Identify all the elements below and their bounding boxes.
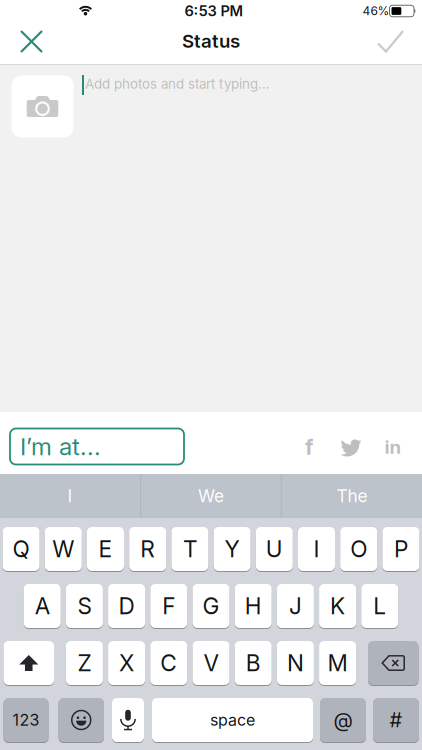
staticText: Q <box>13 536 30 562</box>
button[interactable]: Share to Twitter <box>335 434 366 461</box>
staticText: D <box>119 593 135 619</box>
staticText: Y <box>225 536 240 562</box>
button[interactable]: Hashtag <box>373 697 419 742</box>
button[interactable]: L <box>361 583 398 628</box>
button[interactable]: Emoji <box>58 697 104 742</box>
staticText: R <box>140 536 155 562</box>
button[interactable]: P <box>382 526 419 571</box>
staticText: F <box>162 593 175 619</box>
button[interactable]: Dictate <box>112 697 144 742</box>
staticText: O <box>350 536 367 562</box>
button[interactable]: J <box>277 583 314 628</box>
button[interactable]: D <box>108 583 145 628</box>
staticText: We <box>198 486 224 506</box>
staticText: 123 <box>12 711 39 729</box>
staticText: I <box>67 486 72 506</box>
button[interactable]: T <box>171 526 208 571</box>
staticText: C <box>160 650 177 676</box>
button[interactable]: Space <box>152 697 313 742</box>
button[interactable]: We <box>146 474 276 518</box>
button[interactable]: Numbers <box>3 697 48 742</box>
button[interactable]: N <box>277 640 314 685</box>
staticText: L <box>373 593 386 619</box>
button[interactable]: Y <box>214 526 251 571</box>
button[interactable]: W <box>45 526 82 571</box>
staticText: The <box>336 486 367 506</box>
button[interactable]: Q <box>3 526 40 571</box>
button[interactable]: Share to Facebook <box>294 432 324 462</box>
staticText: S <box>77 593 91 619</box>
staticText: N <box>287 650 304 676</box>
staticText: X <box>119 650 134 676</box>
staticText: E <box>98 536 112 562</box>
staticText: J <box>289 593 302 619</box>
button[interactable]: X <box>108 640 145 685</box>
staticText: # <box>389 708 402 732</box>
button[interactable]: A <box>24 583 61 628</box>
button[interactable]: Post status <box>369 22 412 61</box>
staticText: f <box>305 434 313 460</box>
button[interactable]: The <box>287 474 417 518</box>
button[interactable]: H <box>235 583 272 628</box>
staticText: B <box>246 650 261 676</box>
staticText: in <box>384 436 401 458</box>
button[interactable]: Shift <box>3 640 54 685</box>
button[interactable]: Delete <box>368 640 418 685</box>
staticText: P <box>394 536 408 562</box>
button[interactable]: Z <box>66 640 103 685</box>
staticText: U <box>266 536 283 562</box>
button[interactable]: F <box>150 583 187 628</box>
button[interactable]: Share to LinkedIn <box>378 432 408 462</box>
staticText: W <box>52 536 74 562</box>
button[interactable]: Close <box>11 21 52 62</box>
button[interactable]: Add photos <box>11 75 73 137</box>
button[interactable]: V <box>192 640 229 685</box>
staticText: K <box>330 593 345 619</box>
button[interactable]: At <box>320 697 366 742</box>
button[interactable]: B <box>235 640 272 685</box>
staticText: Z <box>77 650 91 676</box>
staticText: 6:53 PM <box>184 2 243 19</box>
button[interactable]: K <box>319 583 356 628</box>
button[interactable]: U <box>256 526 293 571</box>
button[interactable]: I <box>5 474 135 518</box>
button[interactable]: O <box>340 526 377 571</box>
staticText: M <box>328 650 348 676</box>
button[interactable]: M <box>319 640 356 685</box>
staticText: V <box>203 650 218 676</box>
staticText: space <box>210 711 255 729</box>
button[interactable]: G <box>192 583 229 628</box>
button[interactable]: E <box>87 526 124 571</box>
staticText: I <box>313 536 319 562</box>
staticText: @ <box>333 708 352 732</box>
staticText: A <box>35 593 50 619</box>
button[interactable]: I <box>298 526 335 571</box>
button[interactable]: S <box>66 583 103 628</box>
staticText: Status <box>182 30 240 52</box>
staticText: T <box>183 536 197 562</box>
staticText: 46% <box>362 4 389 18</box>
button[interactable]: C <box>150 640 187 685</box>
staticText: Add photos and start typing... <box>85 76 270 92</box>
staticText: H <box>245 593 262 619</box>
staticText: I’m at... <box>20 432 101 461</box>
button[interactable]: I’m at... <box>10 428 184 464</box>
button[interactable]: R <box>129 526 166 571</box>
staticText: G <box>202 593 219 619</box>
